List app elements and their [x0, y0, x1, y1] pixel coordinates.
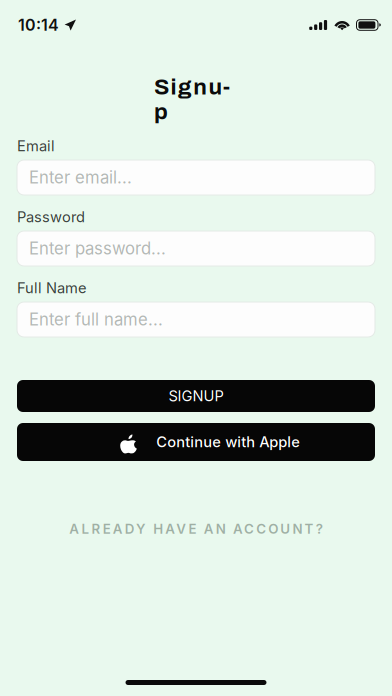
- staticText: ALREADY HAVE AN ACCOUNT?: [69, 521, 323, 537]
- button[interactable]: Enter full name...: [17, 302, 375, 337]
- button[interactable]: SIGNUP: [17, 380, 375, 412]
- staticText: Full Name: [17, 279, 87, 297]
- button[interactable]: Continue with Apple: [17, 423, 375, 461]
- staticText: 10:14: [18, 15, 59, 35]
- button[interactable]: ALREADY HAVE AN ACCOUNT?: [69, 522, 323, 536]
- button[interactable]: Enter email...: [17, 160, 375, 195]
- staticText: Email: [17, 137, 55, 155]
- staticText: SIGNUP: [168, 387, 223, 405]
- staticText: Enter email...: [29, 167, 132, 188]
- button[interactable]: Enter password...: [17, 231, 375, 266]
- staticText: Continue with Apple: [156, 433, 300, 451]
- staticText: Enter password...: [29, 238, 166, 259]
- staticText: Signup: [154, 75, 238, 99]
- staticText: Enter full name...: [29, 309, 163, 330]
- staticText: Password: [17, 208, 85, 226]
